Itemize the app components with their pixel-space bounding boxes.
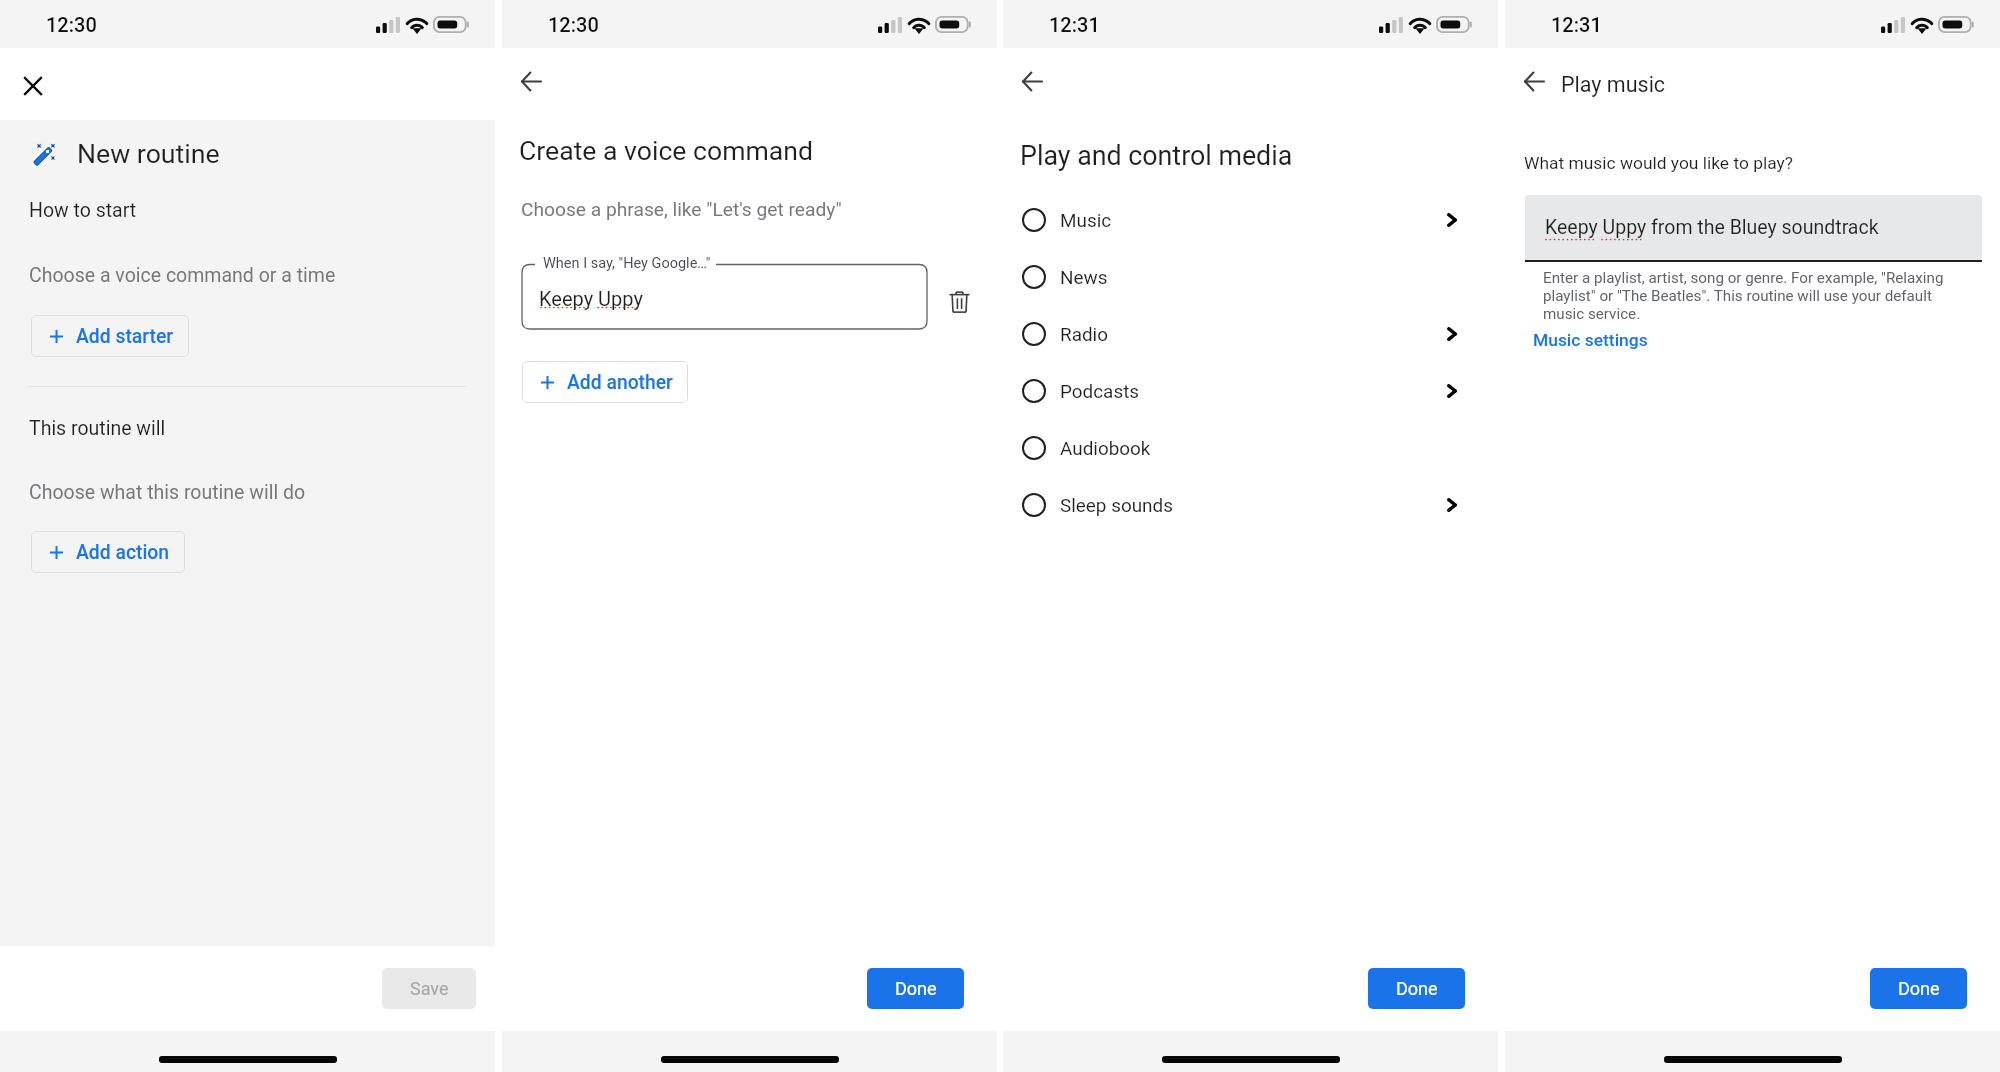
staticText: Enter a playlist, artist, song or genre.… bbox=[1543, 269, 1968, 323]
staticText: Done bbox=[1898, 978, 1940, 999]
staticText: Podcasts bbox=[1060, 380, 1140, 402]
button[interactable]: Save bbox=[382, 968, 476, 1009]
button[interactable]: Close bbox=[11, 64, 54, 107]
staticText: When I say, "Hey Google…" bbox=[543, 255, 711, 272]
staticText: Choose a phrase, like "Let's get ready" bbox=[521, 198, 842, 221]
staticText: Add action bbox=[76, 541, 170, 564]
button[interactable]: Keepy Uppy from the Bluey soundtrack bbox=[1525, 195, 1982, 260]
staticText: Audiobook bbox=[1060, 437, 1151, 459]
staticText: This routine will bbox=[29, 417, 166, 440]
staticText: Done bbox=[1396, 978, 1438, 999]
button[interactable]: Add starter bbox=[31, 315, 189, 357]
staticText: Play music bbox=[1561, 72, 1666, 97]
button[interactable]: Done bbox=[867, 968, 964, 1009]
button[interactable]: Back bbox=[1010, 60, 1053, 103]
staticText: Keepy Uppy from the Bluey soundtrack bbox=[1545, 216, 1879, 239]
staticText: 12:30 bbox=[46, 13, 97, 36]
staticText: Radio bbox=[1060, 323, 1108, 345]
button[interactable]: Delete bbox=[927, 256, 991, 329]
button[interactable]: Back bbox=[1512, 60, 1555, 103]
staticText: New routine bbox=[77, 138, 220, 168]
staticText: What music would you like to play? bbox=[1524, 153, 1793, 173]
staticText: How to start bbox=[29, 199, 137, 222]
staticText: Music bbox=[1060, 209, 1112, 231]
staticText: Add starter bbox=[76, 325, 174, 348]
staticText: Music settings bbox=[1533, 330, 1648, 350]
staticText: Choose a voice command or a time bbox=[29, 264, 336, 287]
button[interactable]: Music settings bbox=[1533, 330, 1648, 350]
staticText: Create a voice command bbox=[519, 135, 813, 166]
button[interactable]: Radio bbox=[1003, 305, 1498, 362]
button[interactable]: Back bbox=[509, 60, 552, 103]
staticText: Add another bbox=[567, 371, 673, 394]
staticText: Sleep sounds bbox=[1060, 494, 1173, 516]
staticText: News bbox=[1060, 266, 1108, 288]
button[interactable]: Podcasts bbox=[1003, 362, 1498, 419]
button[interactable]: News bbox=[1003, 248, 1498, 305]
staticText: Choose what this routine will do bbox=[29, 481, 306, 504]
staticText: Play and control media bbox=[1020, 140, 1293, 171]
staticText: 12:30 bbox=[548, 13, 599, 36]
button[interactable]: Done bbox=[1368, 968, 1465, 1009]
button[interactable]: Music bbox=[1003, 191, 1498, 248]
button[interactable]: Done bbox=[1870, 968, 1967, 1009]
button[interactable]: Add action bbox=[31, 531, 185, 573]
staticText: 12:31 bbox=[1551, 13, 1602, 36]
button[interactable]: Add another bbox=[522, 361, 688, 403]
staticText: Keepy Uppy bbox=[539, 287, 643, 310]
button[interactable]: Sleep sounds bbox=[1003, 476, 1498, 533]
staticText: 12:31 bbox=[1049, 13, 1100, 36]
staticText: Save bbox=[410, 978, 449, 999]
button[interactable]: Audiobook bbox=[1003, 419, 1498, 476]
staticText: Done bbox=[895, 978, 937, 999]
